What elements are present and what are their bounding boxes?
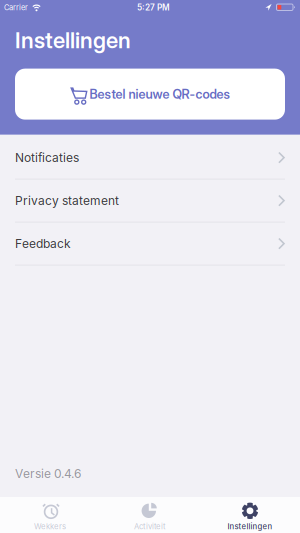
- staticText: Carrier: [4, 3, 28, 12]
- staticText: Feedback: [15, 236, 71, 251]
- button[interactable]: Instellingen: [200, 499, 300, 531]
- staticText: 5:27 PM: [137, 2, 170, 12]
- button[interactable]: Activiteit: [100, 499, 200, 531]
- staticText: Bestel nieuwe QR-codes: [89, 86, 229, 102]
- staticText: Notificaties: [15, 150, 79, 165]
- staticText: Privacy statement: [15, 193, 119, 208]
- staticText: Activiteit: [134, 522, 166, 531]
- staticText: Versie 0.4.6: [15, 466, 81, 481]
- button[interactable]: Privacy statement: [0, 180, 300, 222]
- button[interactable]: Notificaties: [0, 137, 300, 179]
- staticText: Instellingen: [227, 522, 272, 531]
- staticText: Instellingen: [15, 27, 131, 54]
- button[interactable]: Bestel nieuwe QR-codes: [15, 69, 285, 120]
- button[interactable]: Feedback: [0, 223, 300, 265]
- staticText: Wekkers: [34, 522, 66, 531]
- button[interactable]: Wekkers: [0, 499, 100, 531]
